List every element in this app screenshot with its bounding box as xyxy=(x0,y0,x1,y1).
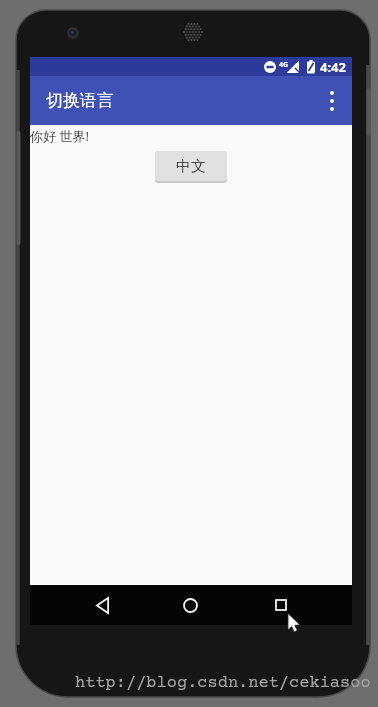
staticText: 你好 世界! xyxy=(30,127,89,145)
button[interactable] xyxy=(249,585,313,625)
button[interactable] xyxy=(312,76,352,125)
staticText: 切换语言 xyxy=(46,90,114,111)
button[interactable] xyxy=(70,585,134,625)
button[interactable] xyxy=(158,585,222,625)
staticText: 中文 xyxy=(176,157,206,176)
staticText: http://blog.csdn.net/cekiasoo xyxy=(75,674,371,693)
staticText: 4:42 xyxy=(320,58,346,76)
button[interactable]: 中文 xyxy=(155,151,227,181)
staticText: 4G xyxy=(279,60,289,70)
